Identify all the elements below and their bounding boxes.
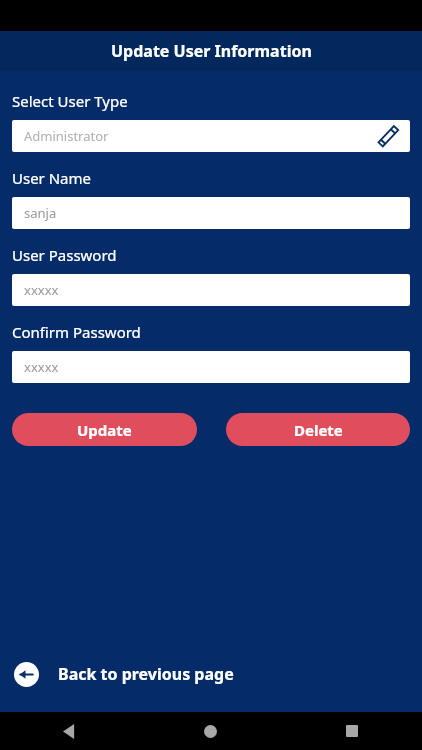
button[interactable]: Update <box>12 413 197 446</box>
staticText: Update User Information <box>111 40 312 62</box>
staticText: Back to previous page <box>58 663 234 685</box>
staticText: sanja <box>24 204 410 222</box>
button[interactable]: xxxxx <box>12 274 410 306</box>
staticText: Select User Type <box>12 91 128 111</box>
button[interactable]: xxxxx <box>12 351 410 383</box>
button[interactable]: Administrator <box>12 120 410 152</box>
button[interactable]: Recent apps <box>281 712 422 750</box>
button[interactable]: Home <box>140 712 281 750</box>
staticText: User Name <box>12 168 92 188</box>
staticText: xxxxx <box>24 358 410 376</box>
staticText: Delete <box>294 420 343 440</box>
button[interactable]: Back to previous page <box>0 651 422 697</box>
staticText: Confirm Password <box>12 322 141 342</box>
button[interactable]: Edit user type <box>376 123 402 149</box>
staticText: Update <box>77 420 132 440</box>
staticText: xxxxx <box>24 281 410 299</box>
staticText: User Password <box>12 245 117 265</box>
button[interactable]: Delete <box>226 413 410 446</box>
button[interactable]: sanja <box>12 197 410 229</box>
staticText: Administrator <box>24 127 376 145</box>
button[interactable]: Back <box>0 712 140 750</box>
